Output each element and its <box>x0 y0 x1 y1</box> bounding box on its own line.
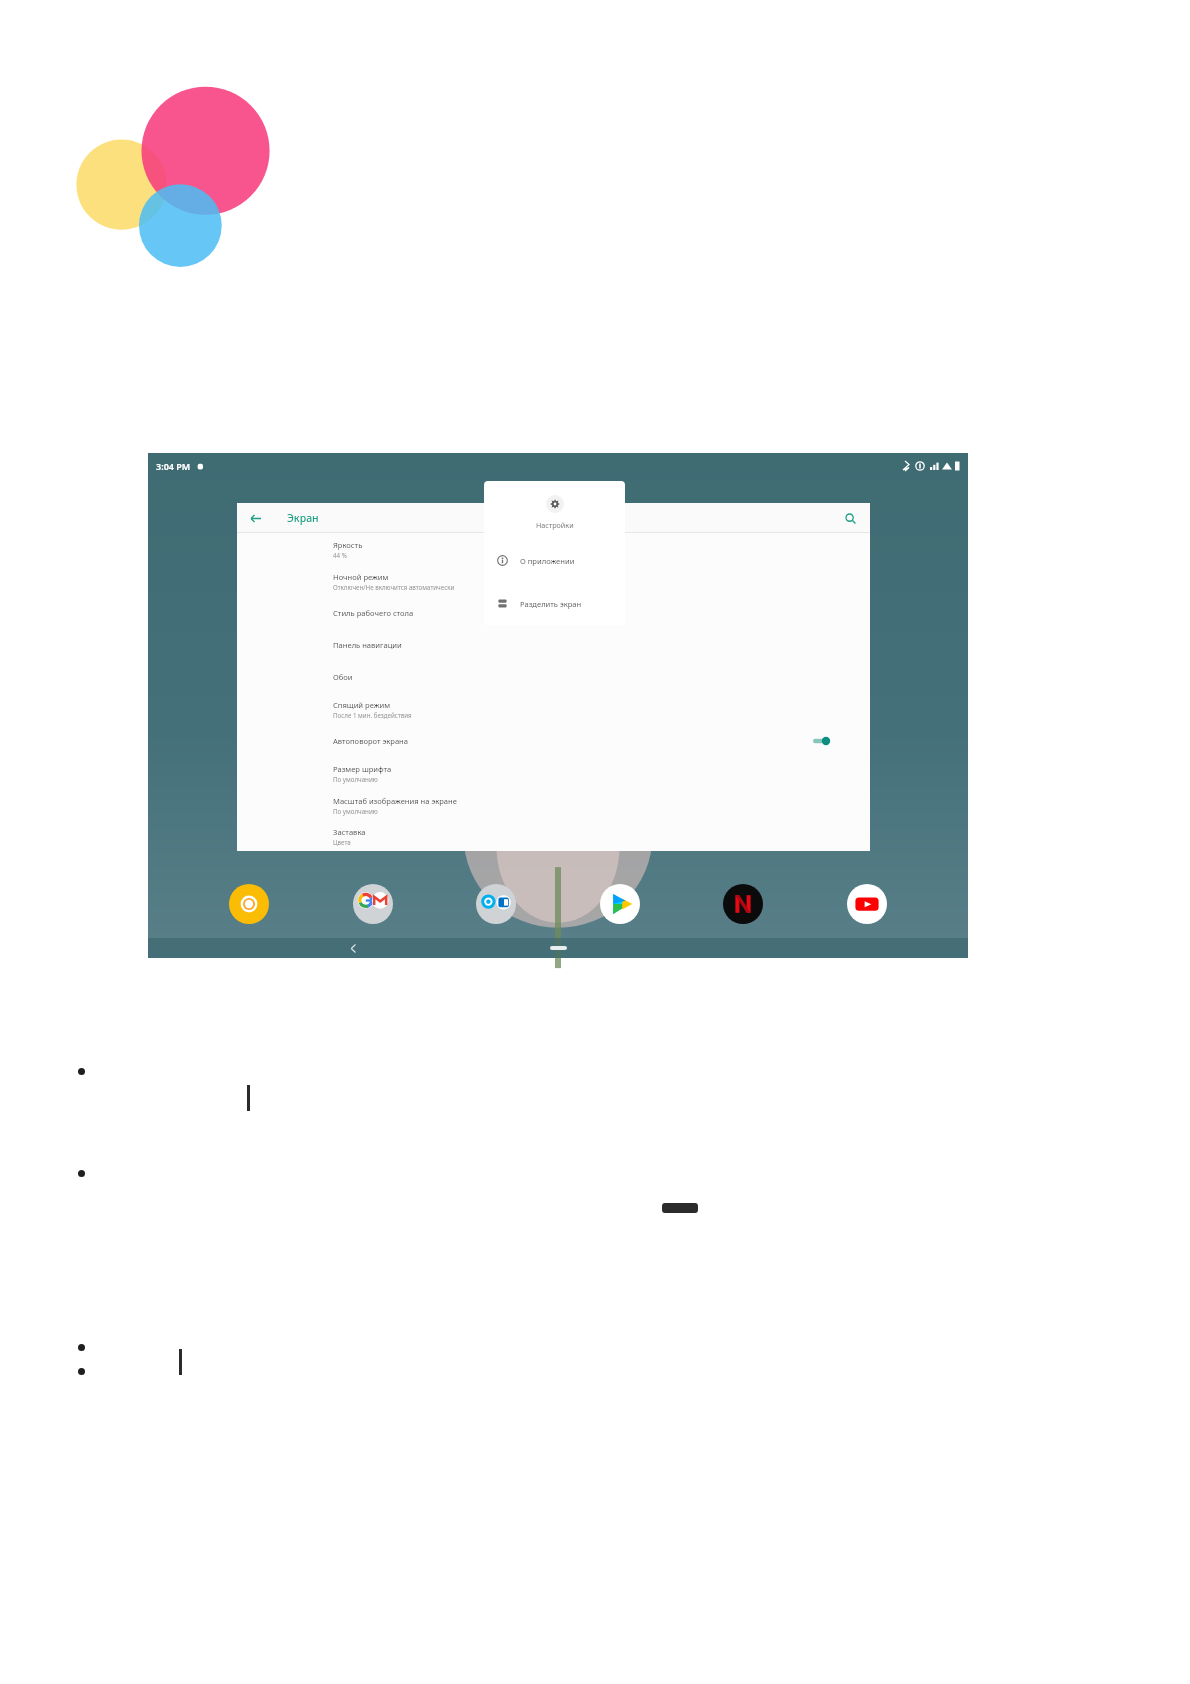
staticText: Ночной режим <box>333 572 389 582</box>
button[interactable]: Chrome <box>227 882 271 926</box>
button[interactable] <box>804 735 830 747</box>
staticText: Яркость <box>333 540 363 550</box>
button[interactable]: Разделить экран <box>484 582 625 625</box>
button[interactable]: Назад <box>245 508 265 528</box>
button[interactable]: Google <box>351 882 395 926</box>
staticText: Масштаб изображения на экране <box>333 796 457 806</box>
staticText: После 1 мин. бездействия <box>333 711 412 719</box>
button[interactable]: Спящий режим <box>237 693 870 725</box>
staticText: 44 % <box>333 551 347 559</box>
button[interactable]: Масштаб изображения на экране <box>237 789 870 821</box>
button[interactable]: Ночной режим <box>237 565 870 597</box>
button[interactable]: Обои <box>237 661 870 693</box>
button[interactable]: Office <box>474 882 518 926</box>
button[interactable]: Стиль рабочего стола <box>237 597 870 629</box>
button[interactable]: Netflix <box>721 882 765 926</box>
staticText: Автоповорот экрана <box>333 736 408 746</box>
staticText: Спящий режим <box>333 700 391 710</box>
staticText: Размер шрифта <box>333 764 392 774</box>
staticText: Стиль рабочего стола <box>333 608 414 618</box>
button[interactable]: YouTube <box>845 882 889 926</box>
button[interactable]: Заставка <box>237 821 870 851</box>
button[interactable]: Автоповорот экрана <box>237 725 870 757</box>
staticText: По умолчанию <box>333 807 378 815</box>
staticText: О приложении <box>520 556 575 566</box>
staticText: По умолчанию <box>333 775 378 783</box>
button[interactable]: Панель навигации <box>237 629 870 661</box>
button[interactable]: Поиск <box>840 508 860 528</box>
staticText: Обои <box>333 672 353 682</box>
button[interactable]: Play Маркет <box>598 882 642 926</box>
staticText: Цвета <box>333 838 351 846</box>
button[interactable]: Главный экран <box>547 943 569 953</box>
staticText: Настройки <box>536 520 574 530</box>
button[interactable]: О приложении <box>484 539 625 582</box>
button[interactable]: Назад <box>344 939 362 957</box>
staticText: Экран <box>287 511 319 525</box>
staticText: Отключен/Не включится автоматически <box>333 583 455 591</box>
button[interactable]: Яркость <box>237 533 870 565</box>
button[interactable]: Настройки <box>484 481 625 539</box>
staticText: Заставка <box>333 827 366 837</box>
staticText: Разделить экран <box>520 599 582 609</box>
staticText: Панель навигации <box>333 640 402 650</box>
staticText: 3:04 PM <box>156 460 191 472</box>
button[interactable]: Размер шрифта <box>237 757 870 789</box>
